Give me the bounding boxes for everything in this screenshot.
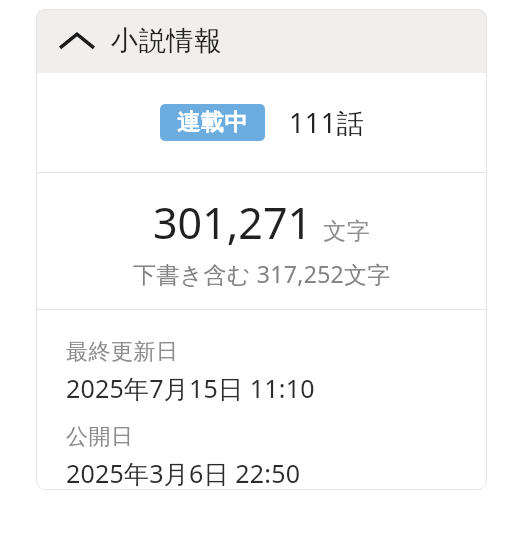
staticText: 公開日 (66, 423, 134, 451)
staticText: 最終更新日 (66, 338, 179, 366)
staticText: 301,271 (153, 193, 313, 252)
staticText: 小説情報 (111, 24, 223, 58)
other: 折りたたむ (57, 21, 97, 61)
staticText: 2025年7月15日 11:10 (66, 371, 315, 405)
button[interactable]: 連載中 (160, 104, 265, 141)
staticText: 111話 (289, 104, 364, 141)
staticText: 連載中 (177, 108, 248, 137)
button[interactable]: 折りたたむ (36, 9, 487, 73)
staticText: 2025年3月6日 22:50 (66, 456, 301, 490)
staticText: 下書き含む 317,252文字 (133, 258, 391, 289)
staticText: 文字 (323, 217, 370, 246)
